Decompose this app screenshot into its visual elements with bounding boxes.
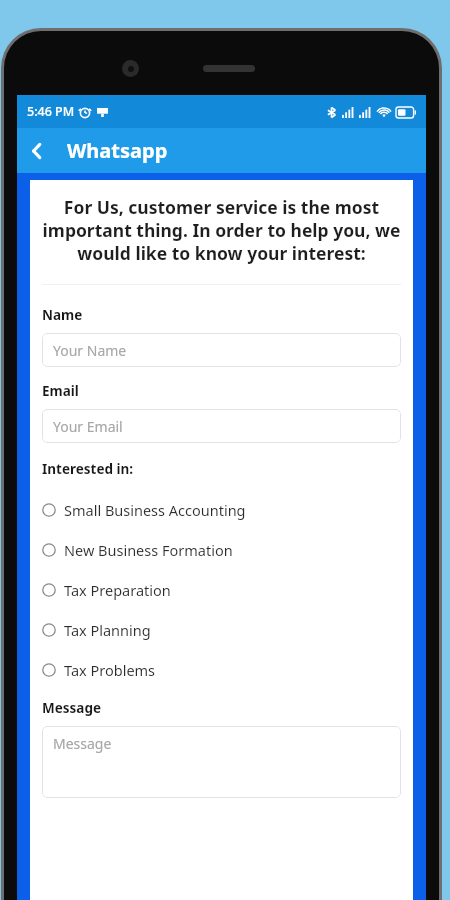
button[interactable]: New Business Formation xyxy=(42,530,401,570)
staticText: Message xyxy=(42,699,102,717)
staticText: Tax Planning xyxy=(64,620,151,640)
staticText: Tax Preparation xyxy=(64,580,171,600)
button[interactable]: Tax Preparation xyxy=(42,570,401,610)
staticText: New Business Formation xyxy=(64,540,233,560)
button[interactable]: Your Name xyxy=(42,333,401,367)
staticText: 5:46 PM xyxy=(27,103,75,120)
staticText: Your Name xyxy=(53,341,127,360)
staticText: Email xyxy=(42,382,79,400)
staticText: Small Business Accounting xyxy=(64,500,246,520)
staticText: Whatsapp xyxy=(67,137,168,164)
staticText: For Us, customer service is the most imp… xyxy=(42,195,401,265)
button[interactable]: Tax Planning xyxy=(42,610,401,650)
button[interactable]: Message xyxy=(42,726,401,798)
staticText: Tax Problems xyxy=(64,660,156,680)
staticText: Name xyxy=(42,306,83,324)
staticText: Message xyxy=(53,734,112,753)
staticText: Your Email xyxy=(53,417,123,436)
button[interactable]: Tax Problems xyxy=(42,650,401,690)
button[interactable]: Back xyxy=(17,131,57,171)
button[interactable]: Small Business Accounting xyxy=(42,490,401,530)
button[interactable]: Your Email xyxy=(42,409,401,443)
staticText: Interested in: xyxy=(42,460,134,478)
